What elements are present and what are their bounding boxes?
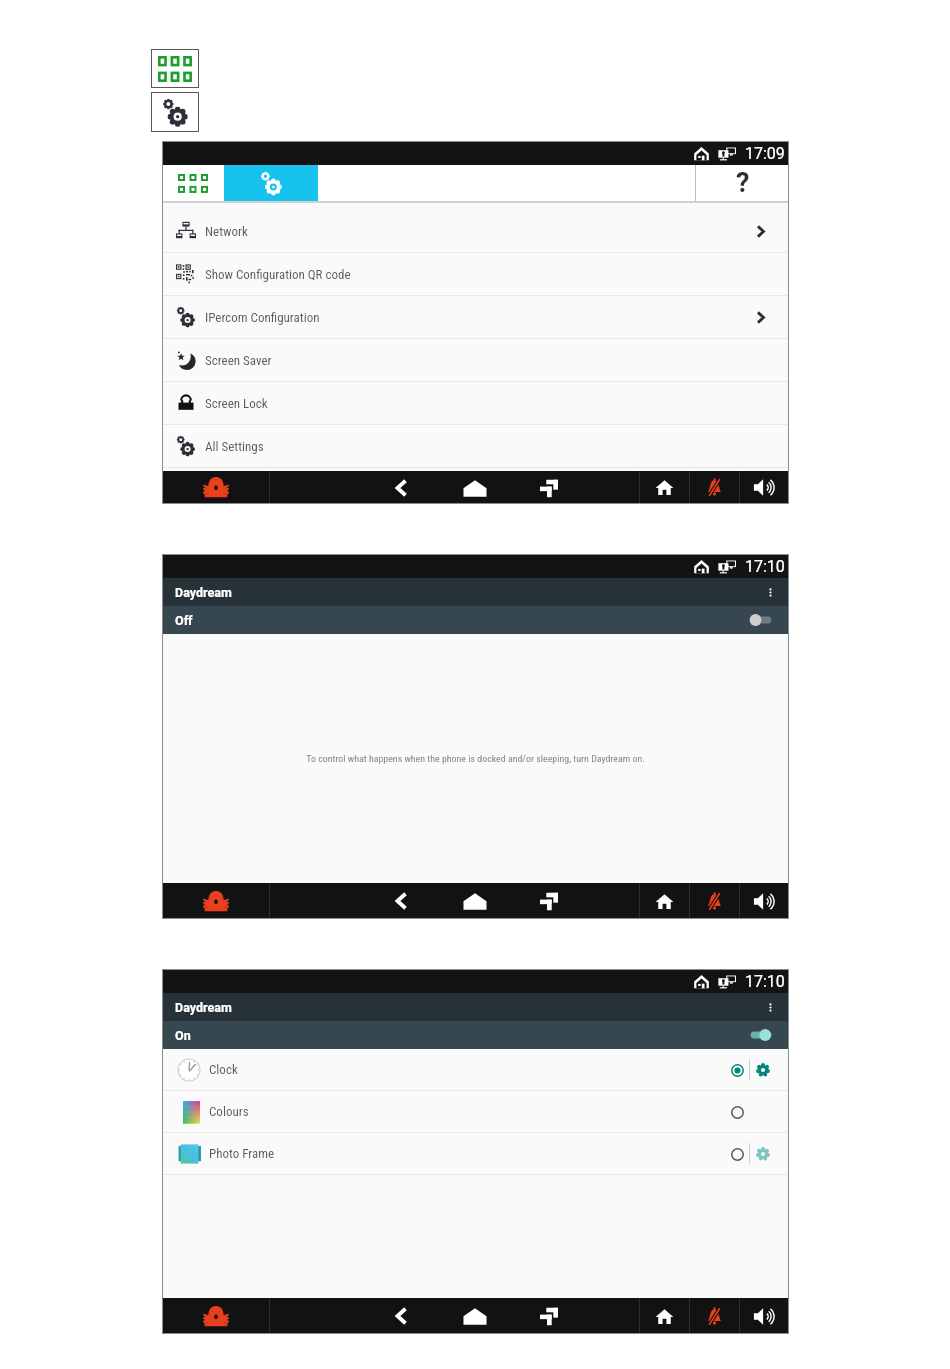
staticText: On (175, 1028, 191, 1043)
button[interactable]: Home (445, 1301, 505, 1331)
button[interactable]: Select Clock (726, 1053, 749, 1087)
staticText: Network (205, 224, 248, 239)
staticText: IPercom Configuration (205, 310, 320, 325)
button[interactable]: Clock (162, 1049, 789, 1090)
button[interactable]: On (162, 1021, 789, 1049)
button[interactable]: Photo Frame (162, 1133, 789, 1174)
button[interactable]: IPercom Configuration (162, 296, 789, 338)
button[interactable]: Photo Frame settings (750, 1137, 776, 1171)
button[interactable]: App menu (162, 883, 269, 919)
button[interactable]: More options (755, 578, 785, 606)
button[interactable]: Back (371, 886, 431, 916)
button[interactable]: Volume (740, 471, 789, 504)
button[interactable]: Volume (740, 883, 789, 919)
staticText: Screen Saver (205, 353, 272, 368)
button[interactable]: Network (162, 210, 789, 252)
button[interactable]: Recent apps (519, 473, 579, 503)
staticText: Show Configuration QR code (205, 267, 351, 282)
button[interactable]: Help (696, 165, 789, 201)
button[interactable]: Off (162, 606, 789, 634)
staticText: 17:10 (745, 972, 785, 991)
staticText: Daydream (175, 585, 232, 600)
staticText: Off (175, 613, 193, 628)
button[interactable]: Colours (162, 1091, 789, 1132)
staticText: Colours (209, 1104, 249, 1119)
button[interactable]: All Settings (162, 425, 789, 467)
button[interactable]: Back (371, 1301, 431, 1331)
button[interactable]: Show Configuration QR code (162, 253, 789, 295)
button[interactable]: Mute notifications (690, 471, 739, 504)
button[interactable]: Volume (740, 1298, 789, 1334)
button[interactable]: Apps (162, 165, 224, 201)
button[interactable]: Home screen (640, 1298, 689, 1334)
staticText: Clock (209, 1062, 238, 1077)
button[interactable]: Recent apps (519, 1301, 579, 1331)
button[interactable]: Screen Saver (162, 339, 789, 381)
staticText: Screen Lock (205, 396, 268, 411)
button[interactable]: Clock settings (750, 1053, 776, 1087)
button[interactable]: Home screen (640, 471, 689, 504)
button[interactable]: Mute notifications (690, 883, 739, 919)
button[interactable]: Mute notifications (690, 1298, 739, 1334)
button[interactable]: Screen Lock (162, 382, 789, 424)
button[interactable]: More options (755, 993, 785, 1021)
button[interactable]: Select Colours (726, 1095, 749, 1129)
button[interactable]: Recent apps (519, 886, 579, 916)
button[interactable]: App menu (162, 471, 269, 504)
staticText: All Settings (205, 439, 264, 454)
staticText: 17:09 (745, 144, 785, 163)
button[interactable]: Home screen (640, 883, 689, 919)
staticText: ? (736, 167, 750, 199)
button[interactable]: Home (445, 473, 505, 503)
staticText: 17:10 (745, 557, 785, 576)
button[interactable]: Select Photo Frame (726, 1137, 749, 1171)
button[interactable]: Back (371, 473, 431, 503)
button[interactable]: Settings (224, 165, 318, 201)
button[interactable]: App menu (162, 1298, 269, 1334)
button[interactable]: Home (445, 886, 505, 916)
staticText: Daydream (175, 1000, 232, 1015)
staticText: Photo Frame (209, 1146, 275, 1161)
staticText: To control what happens when the phone i… (306, 753, 645, 765)
